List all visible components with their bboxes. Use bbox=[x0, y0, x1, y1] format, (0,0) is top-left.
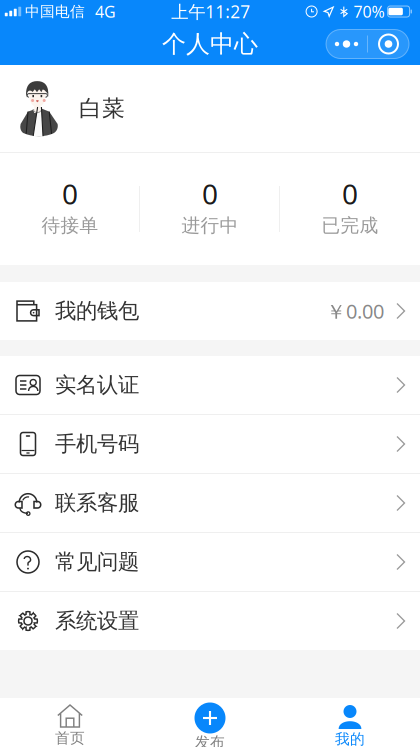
staticText: 4G bbox=[95, 1, 116, 22]
button[interactable]: 0 bbox=[0, 153, 140, 265]
staticText: 发布 bbox=[195, 733, 225, 747]
staticText: 常见问题 bbox=[55, 549, 139, 575]
button[interactable]: Close bbox=[368, 29, 409, 58]
staticText: 联系客服 bbox=[55, 490, 139, 516]
staticText: 实名认证 bbox=[55, 372, 139, 398]
button[interactable]: 发布 bbox=[140, 698, 280, 747]
staticText: 中国电信 bbox=[25, 2, 85, 20]
button[interactable]: 常见问题 bbox=[0, 533, 420, 591]
staticText: 70% bbox=[354, 1, 385, 22]
staticText: 个人中心 bbox=[162, 29, 258, 59]
staticText: 进行中 bbox=[181, 214, 238, 237]
button[interactable]: 实名认证 bbox=[0, 356, 420, 414]
staticText: 0 bbox=[62, 175, 78, 212]
staticText: 上午11:27 bbox=[171, 0, 250, 23]
staticText: 白菜 bbox=[79, 95, 125, 122]
staticText: ￥0.00 bbox=[326, 298, 384, 324]
button[interactable]: More bbox=[326, 29, 367, 58]
button[interactable]: 我的钱包 bbox=[0, 282, 420, 340]
button[interactable]: 0 bbox=[280, 153, 420, 265]
staticText: 首页 bbox=[55, 729, 85, 747]
staticText: 0 bbox=[342, 175, 358, 212]
button[interactable]: 我的 bbox=[280, 698, 420, 747]
staticText: 我的钱包 bbox=[55, 298, 139, 324]
staticText: 已完成 bbox=[321, 214, 378, 237]
staticText: 系统设置 bbox=[55, 608, 139, 634]
staticText: 手机号码 bbox=[55, 431, 139, 457]
staticText: 0 bbox=[202, 175, 218, 212]
button[interactable]: 手机号码 bbox=[0, 415, 420, 473]
staticText: 待接单 bbox=[41, 214, 98, 237]
staticText: 我的 bbox=[335, 730, 365, 747]
button[interactable]: 0 bbox=[140, 153, 280, 265]
button[interactable]: 联系客服 bbox=[0, 474, 420, 532]
button[interactable]: 首页 bbox=[0, 698, 140, 747]
button[interactable]: 白菜 bbox=[0, 65, 420, 152]
button[interactable]: 系统设置 bbox=[0, 592, 420, 650]
